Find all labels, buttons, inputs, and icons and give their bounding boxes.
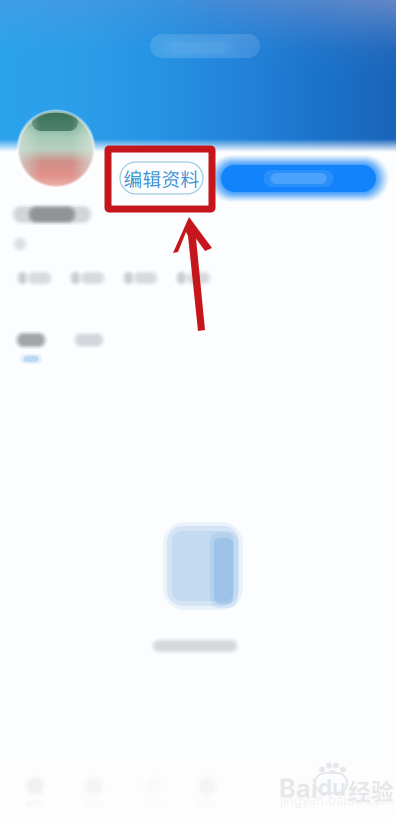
button[interactable]: 统计3: [125, 273, 178, 283]
staticText: du: [318, 774, 346, 801]
button[interactable]: 动态: [2, 334, 60, 364]
button[interactable]: 关注: [208, 155, 389, 202]
button[interactable]: 标签1: [14, 770, 56, 812]
button[interactable]: 统计1: [19, 273, 72, 283]
button[interactable]: 作品: [60, 334, 118, 363]
button[interactable]: 编辑资料: [120, 162, 203, 194]
staticText: 经验: [348, 774, 394, 807]
staticText: Bai: [279, 773, 318, 804]
button[interactable]: 统计2: [72, 273, 125, 283]
staticText: 编辑资料: [123, 164, 199, 191]
button[interactable]: 统计4: [178, 273, 231, 283]
staticText: jingyan.baidu.com: [280, 792, 394, 808]
